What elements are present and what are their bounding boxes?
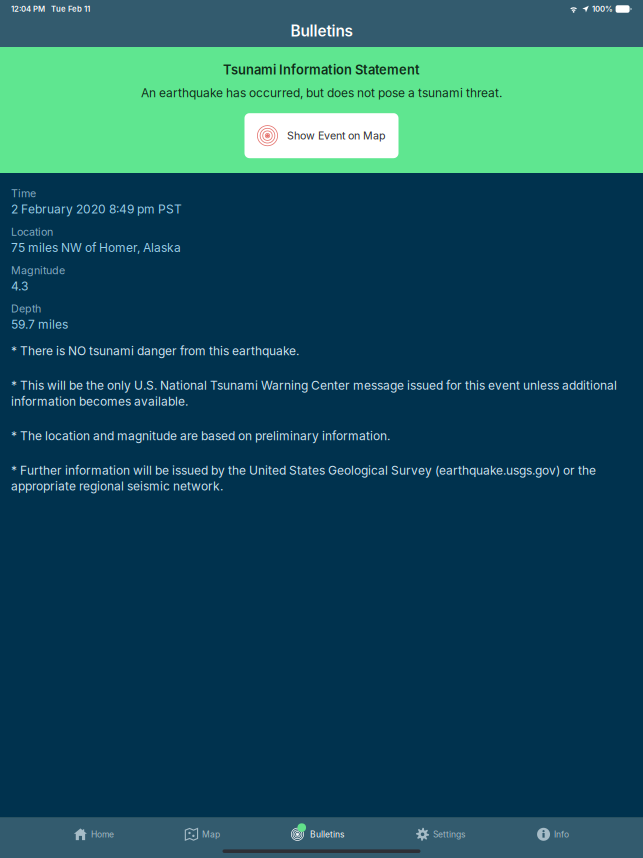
staticText: * There is NO tsunami danger from this e… [11, 344, 299, 358]
staticText: Depth [11, 302, 41, 315]
button[interactable]: Settings [415, 822, 467, 847]
button[interactable]: Map [184, 822, 221, 847]
staticText: Location [11, 225, 53, 238]
staticText: Tsunami Information Statement [223, 62, 420, 78]
staticText: 100% [592, 4, 613, 14]
staticText: Tue Feb 11 [51, 4, 90, 14]
staticText: Show Event on Map [287, 129, 386, 142]
staticText: Magnitude [11, 264, 65, 277]
staticText: * The location and magnitude are based o… [11, 429, 390, 443]
staticText: Time [11, 187, 36, 200]
staticText: Map [202, 829, 220, 839]
button[interactable]: Info [536, 822, 570, 847]
staticText: * This will be the only U.S. National Ts… [11, 378, 617, 408]
staticText: 12:04 PM [11, 4, 45, 14]
button[interactable]: Show Event on Map [244, 113, 398, 158]
staticText: Home [91, 829, 114, 839]
button[interactable]: Home [73, 822, 115, 847]
staticText: 75 miles NW of Homer, Alaska [11, 240, 181, 255]
staticText: * Further information will be issued by … [11, 463, 596, 493]
button[interactable]: Bulletins [290, 822, 346, 847]
staticText: 59.7 miles [11, 317, 68, 332]
staticText: Bulletins [310, 829, 345, 839]
staticText: An earthquake has occurred, but does not… [141, 86, 502, 100]
staticText: Bulletins [290, 22, 352, 40]
staticText: Settings [433, 829, 466, 839]
staticText: 2 February 2020 8:49 pm PST [11, 202, 182, 216]
staticText: Info [554, 829, 569, 839]
staticText: 4.3 [11, 279, 28, 293]
